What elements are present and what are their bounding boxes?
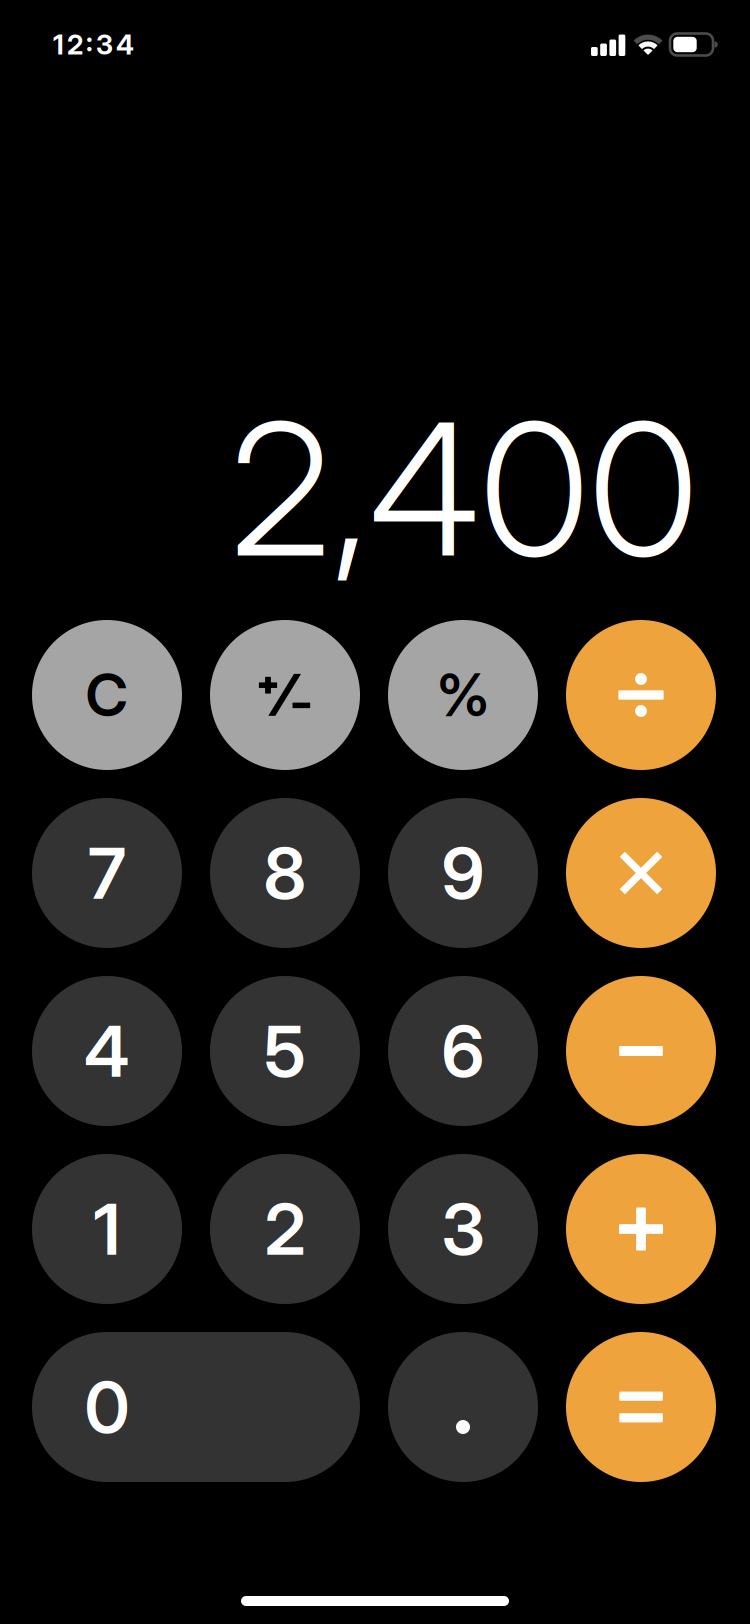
button[interactable]: Minus — [566, 976, 716, 1126]
button[interactable]: Add — [566, 1154, 716, 1304]
button[interactable]: 6 — [388, 976, 538, 1126]
button[interactable]: Multiply — [566, 798, 716, 948]
button[interactable]: Toggle Sign — [210, 620, 360, 770]
button[interactable]: 2 — [210, 1154, 360, 1304]
button[interactable]: 9 — [388, 798, 538, 948]
staticText: 6 — [441, 1008, 484, 1094]
staticText: 0 — [84, 1364, 129, 1450]
staticText: 4 — [84, 1008, 130, 1094]
staticText: 7 — [88, 830, 126, 916]
button[interactable]: 0 — [32, 1332, 360, 1482]
button[interactable]: Decimal Point — [388, 1332, 538, 1482]
staticText: 1 — [93, 1186, 120, 1272]
button[interactable]: % — [388, 620, 538, 770]
button[interactable]: 4 — [32, 976, 182, 1126]
staticText: 8 — [263, 830, 306, 916]
button[interactable]: 1 — [32, 1154, 182, 1304]
button[interactable]: 7 — [32, 798, 182, 948]
button[interactable]: 8 — [210, 798, 360, 948]
staticText: 9 — [441, 830, 484, 916]
button[interactable]: Equals — [566, 1332, 716, 1482]
button[interactable]: Divide — [566, 620, 716, 770]
staticText: % — [436, 659, 489, 730]
staticText: C — [85, 659, 128, 730]
staticText: 2 — [264, 1186, 305, 1272]
staticText: 12:34 — [53, 28, 134, 61]
button[interactable]: 3 — [388, 1154, 538, 1304]
staticText: 2,400 — [230, 378, 698, 599]
staticText: 3 — [441, 1186, 484, 1272]
staticText: 5 — [264, 1008, 306, 1094]
button[interactable]: 5 — [210, 976, 360, 1126]
button[interactable]: C — [32, 620, 182, 770]
